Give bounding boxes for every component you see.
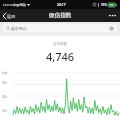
button[interactable]: More options: [105, 10, 120, 21]
staticText: 新学视点: [11, 26, 27, 31]
staticText: 20:17: [57, 2, 66, 7]
staticText: 30k: [2, 81, 7, 85]
staticText: 10k: [2, 109, 7, 113]
button[interactable]: 新学视点: [3, 24, 117, 32]
staticText: 4,746: [0, 49, 120, 64]
button[interactable]: 返回: [0, 11, 19, 21]
staticText: 返回: [7, 14, 16, 19]
staticText: 当前指数: [0, 42, 120, 47]
staticText: 中国移动: [13, 3, 26, 7]
staticText: 20k: [2, 95, 7, 99]
button[interactable]: Settings: [109, 26, 114, 31]
staticText: 指数: [2, 71, 8, 75]
staticText: 微信指数: [49, 12, 72, 19]
staticText: 95%: [101, 3, 107, 7]
